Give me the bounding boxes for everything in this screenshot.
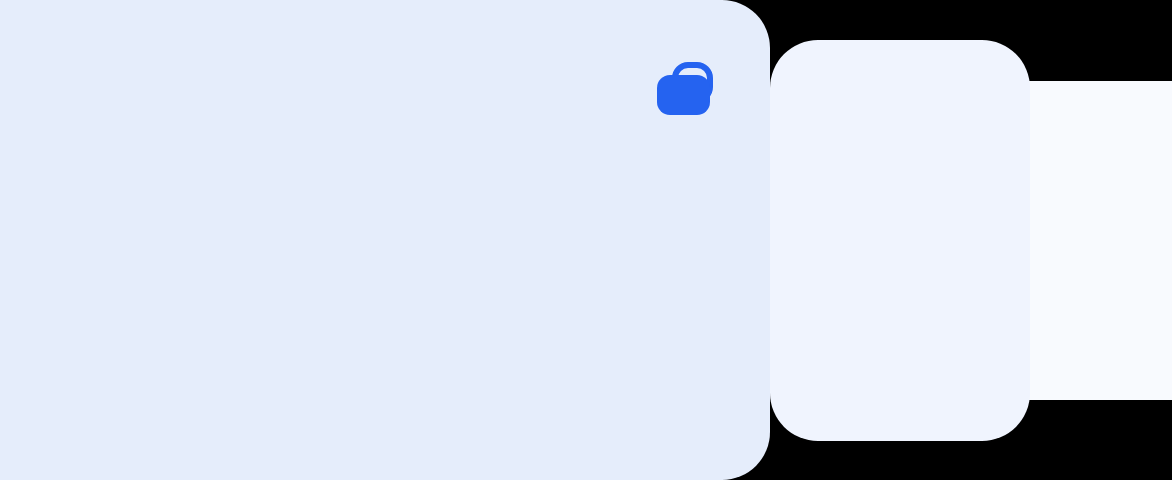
button[interactable]: Card two bbox=[770, 40, 1030, 441]
button[interactable]: Card three bbox=[970, 81, 1172, 400]
button[interactable]: Card one bbox=[0, 0, 770, 480]
button[interactable]: Duplicate bbox=[657, 62, 714, 116]
